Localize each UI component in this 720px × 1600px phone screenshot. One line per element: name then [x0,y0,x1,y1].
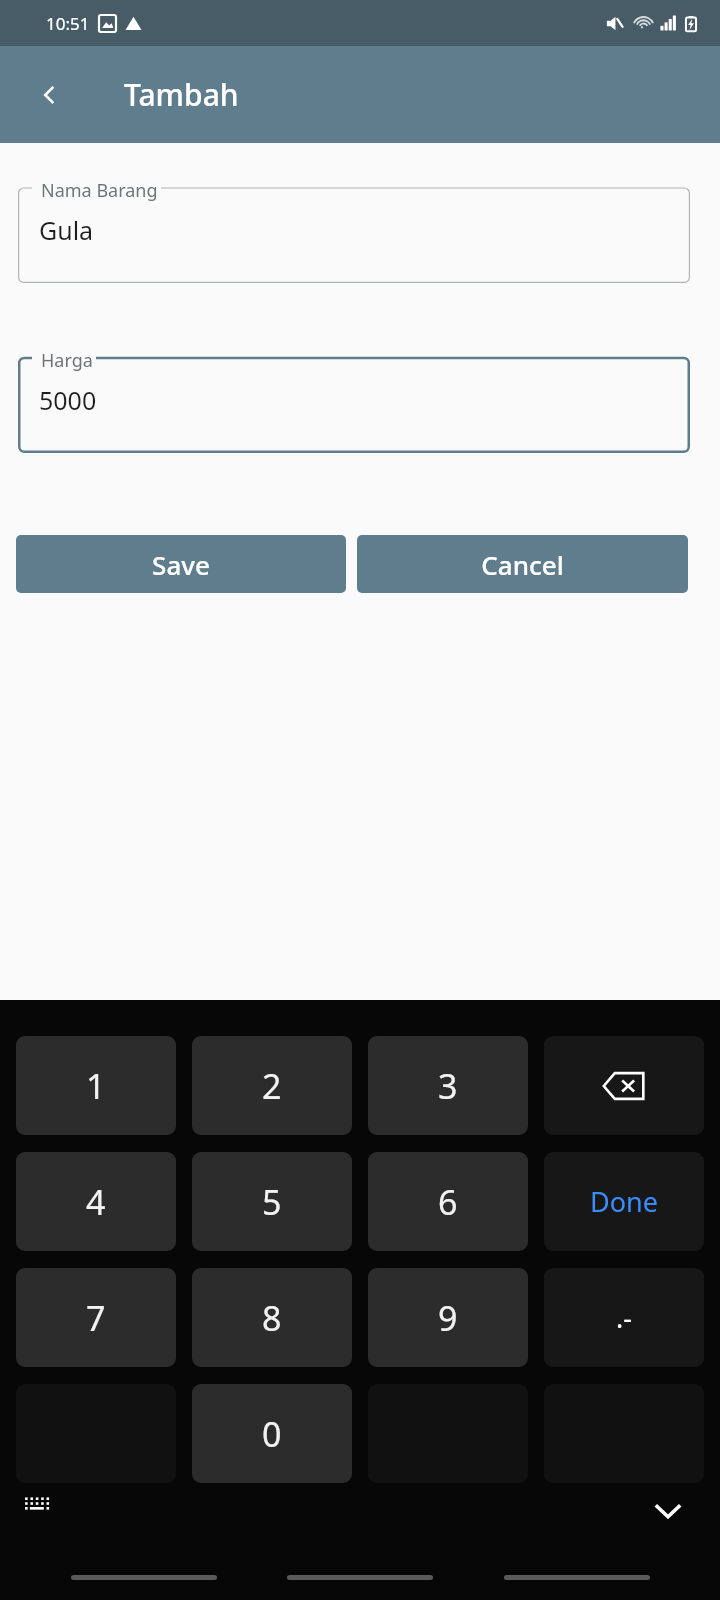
staticText: 4 [86,1179,106,1225]
button[interactable]: 2 [192,1036,352,1135]
button[interactable]: Harga [18,349,690,453]
staticText: Harga [41,348,93,373]
button[interactable]: 5 [192,1152,352,1251]
button[interactable]: .- [544,1268,704,1367]
staticText: 3 [438,1063,458,1109]
staticText: 5000 [39,383,97,417]
staticText: 8 [262,1295,282,1341]
button[interactable]: 8 [192,1268,352,1367]
staticText: Tambah [124,74,239,115]
button[interactable]: 7 [16,1268,176,1367]
staticText: Gula [39,213,94,247]
button[interactable]: Done [544,1152,704,1251]
button[interactable]: 1 [16,1036,176,1135]
button[interactable]: Switch keyboard [12,1480,66,1534]
staticText: 2 [262,1063,282,1109]
button[interactable] [71,1575,217,1580]
button[interactable]: 3 [368,1036,528,1135]
staticText: Nama Barang [41,178,158,203]
button[interactable]: 0 [192,1384,352,1483]
button[interactable] [287,1575,433,1580]
staticText: 6 [438,1179,458,1225]
staticText: Cancel [481,547,564,582]
button[interactable]: Hide keyboard [638,1480,698,1540]
button[interactable]: 6 [368,1152,528,1251]
button[interactable]: 4 [16,1152,176,1251]
staticText: 10:51 [46,12,90,35]
button[interactable]: Back [22,67,78,123]
staticText: Done [590,1183,658,1220]
staticText: 9 [438,1295,458,1341]
staticText: 5 [262,1179,282,1225]
staticText: 7 [86,1295,106,1341]
staticText: 1 [86,1063,106,1109]
button[interactable]: Save [16,535,346,593]
staticText: Save [152,547,210,582]
staticText: .- [616,1299,632,1336]
button[interactable]: Cancel [357,535,688,593]
button[interactable]: Backspace [544,1036,704,1135]
staticText: 0 [262,1411,282,1457]
button[interactable] [504,1575,650,1580]
button[interactable]: 9 [368,1268,528,1367]
button[interactable]: Nama Barang [18,179,690,283]
